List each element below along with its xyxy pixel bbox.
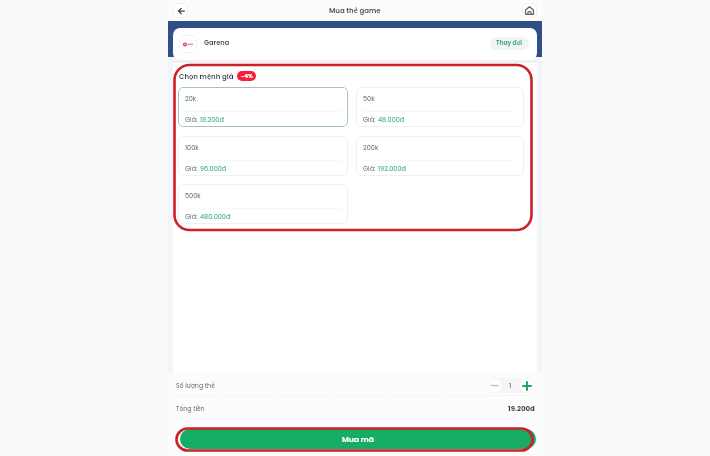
button[interactable]: Thay đổi [490,37,529,50]
staticText: Mua mã [342,434,374,445]
staticText: 1 [509,381,512,390]
staticText: 200k [363,143,379,152]
button[interactable]: 100k [178,136,348,176]
staticText: 96.000đ [200,164,227,173]
button[interactable]: Home [522,3,537,18]
button[interactable]: 20k [178,87,348,127]
staticText: 20k [185,94,197,103]
staticText: 500k [185,191,201,200]
button[interactable]: Back [173,3,188,18]
staticText: 480.000đ [200,212,231,221]
staticText: 19.200đ [508,404,535,414]
staticText: Tổng tiền [176,404,205,413]
staticText: Giá: [185,164,198,173]
button[interactable]: Mua mã [180,429,536,449]
staticText: Giá: [363,164,376,173]
staticText: 50k [363,94,375,103]
staticText: Giá: [363,115,376,124]
staticText: Garena [204,38,230,47]
staticText: -4% [241,72,253,80]
staticText: Chọn mệnh giá [179,72,234,82]
staticText: Số lượng thẻ [176,381,215,390]
button[interactable]: 500k [178,184,348,224]
staticText: Giá: [185,212,198,221]
staticText: Thay đổi [496,39,523,48]
staticText: 100k [185,143,199,152]
staticText: 19.200đ [200,115,224,124]
staticText: Mua thẻ game [329,6,381,16]
button[interactable]: Increase quantity [520,379,533,392]
staticText: Giá: [185,115,198,124]
staticText: 192.000đ [378,164,406,173]
button[interactable]: 50k [356,87,524,127]
staticText: 48.000đ [378,115,405,124]
button[interactable]: Decrease quantity [488,379,501,392]
button[interactable]: 200k [356,136,524,176]
